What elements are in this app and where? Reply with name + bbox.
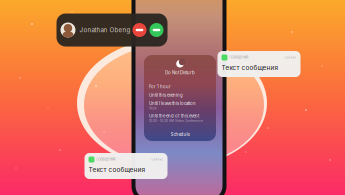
staticText: Jonathan Obeng <box>79 26 130 34</box>
staticText: сейчас <box>284 56 296 59</box>
staticText: Until I leave this location <box>149 101 196 106</box>
staticText: СООБЩЕНИЯ <box>96 158 115 161</box>
staticText: Until the end of this event <box>149 113 199 119</box>
staticText: Until this evening <box>149 93 183 98</box>
button[interactable]: Schedule <box>144 132 216 141</box>
staticText: сейчас <box>151 158 163 161</box>
button[interactable]: Until the end of this event <box>144 112 216 124</box>
staticText: СООБЩЕНИЯ <box>229 56 248 59</box>
button[interactable]: Accept call <box>149 23 163 37</box>
staticText: Do Not Disturb <box>165 70 195 75</box>
staticText: For 1 hour <box>149 84 171 89</box>
staticText: 10:00 - 10:30 AM Video Conference <box>149 119 203 123</box>
staticText: Текст сообщения <box>88 166 145 173</box>
staticText: Schedule <box>170 132 189 137</box>
button[interactable]: Until this evening <box>144 91 216 99</box>
button[interactable]: For 1 hour <box>144 83 216 91</box>
button[interactable]: СООБЩЕНИЯ <box>217 51 300 77</box>
button[interactable]: Until I leave this location <box>144 99 216 112</box>
staticText: Текст сообщения <box>221 64 278 71</box>
button[interactable]: Decline call <box>132 23 146 37</box>
staticText: Work <box>149 106 157 110</box>
button[interactable]: СООБЩЕНИЯ <box>84 153 167 179</box>
